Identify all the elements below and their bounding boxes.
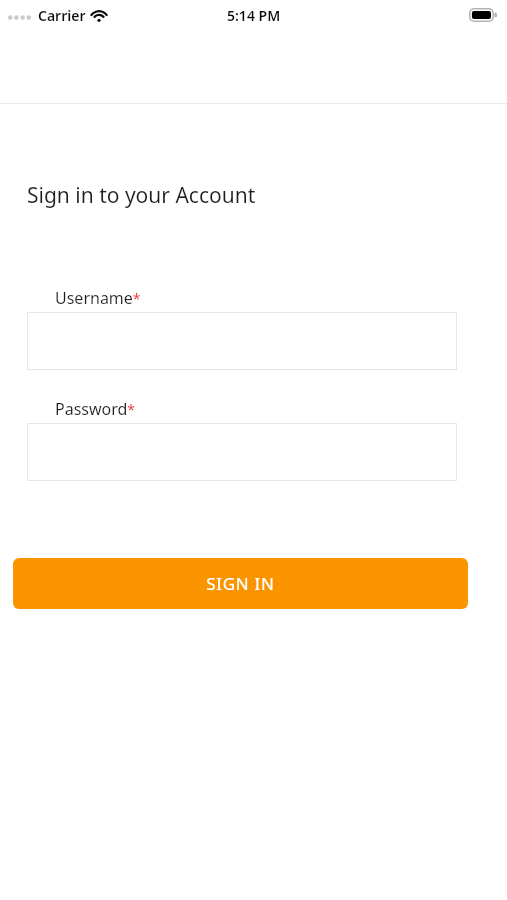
- staticText: Carrier: [38, 6, 86, 25]
- staticText: Password*: [55, 398, 136, 420]
- button[interactable]: SIGN IN: [13, 558, 468, 609]
- staticText: Username*: [55, 287, 141, 309]
- staticText: Sign in to your Account: [27, 181, 256, 210]
- button[interactable]: Username input field: [27, 312, 457, 370]
- staticText: 5:14 PM: [227, 6, 281, 25]
- button[interactable]: Password input field: [27, 423, 457, 481]
- staticText: SIGN IN: [206, 572, 275, 595]
